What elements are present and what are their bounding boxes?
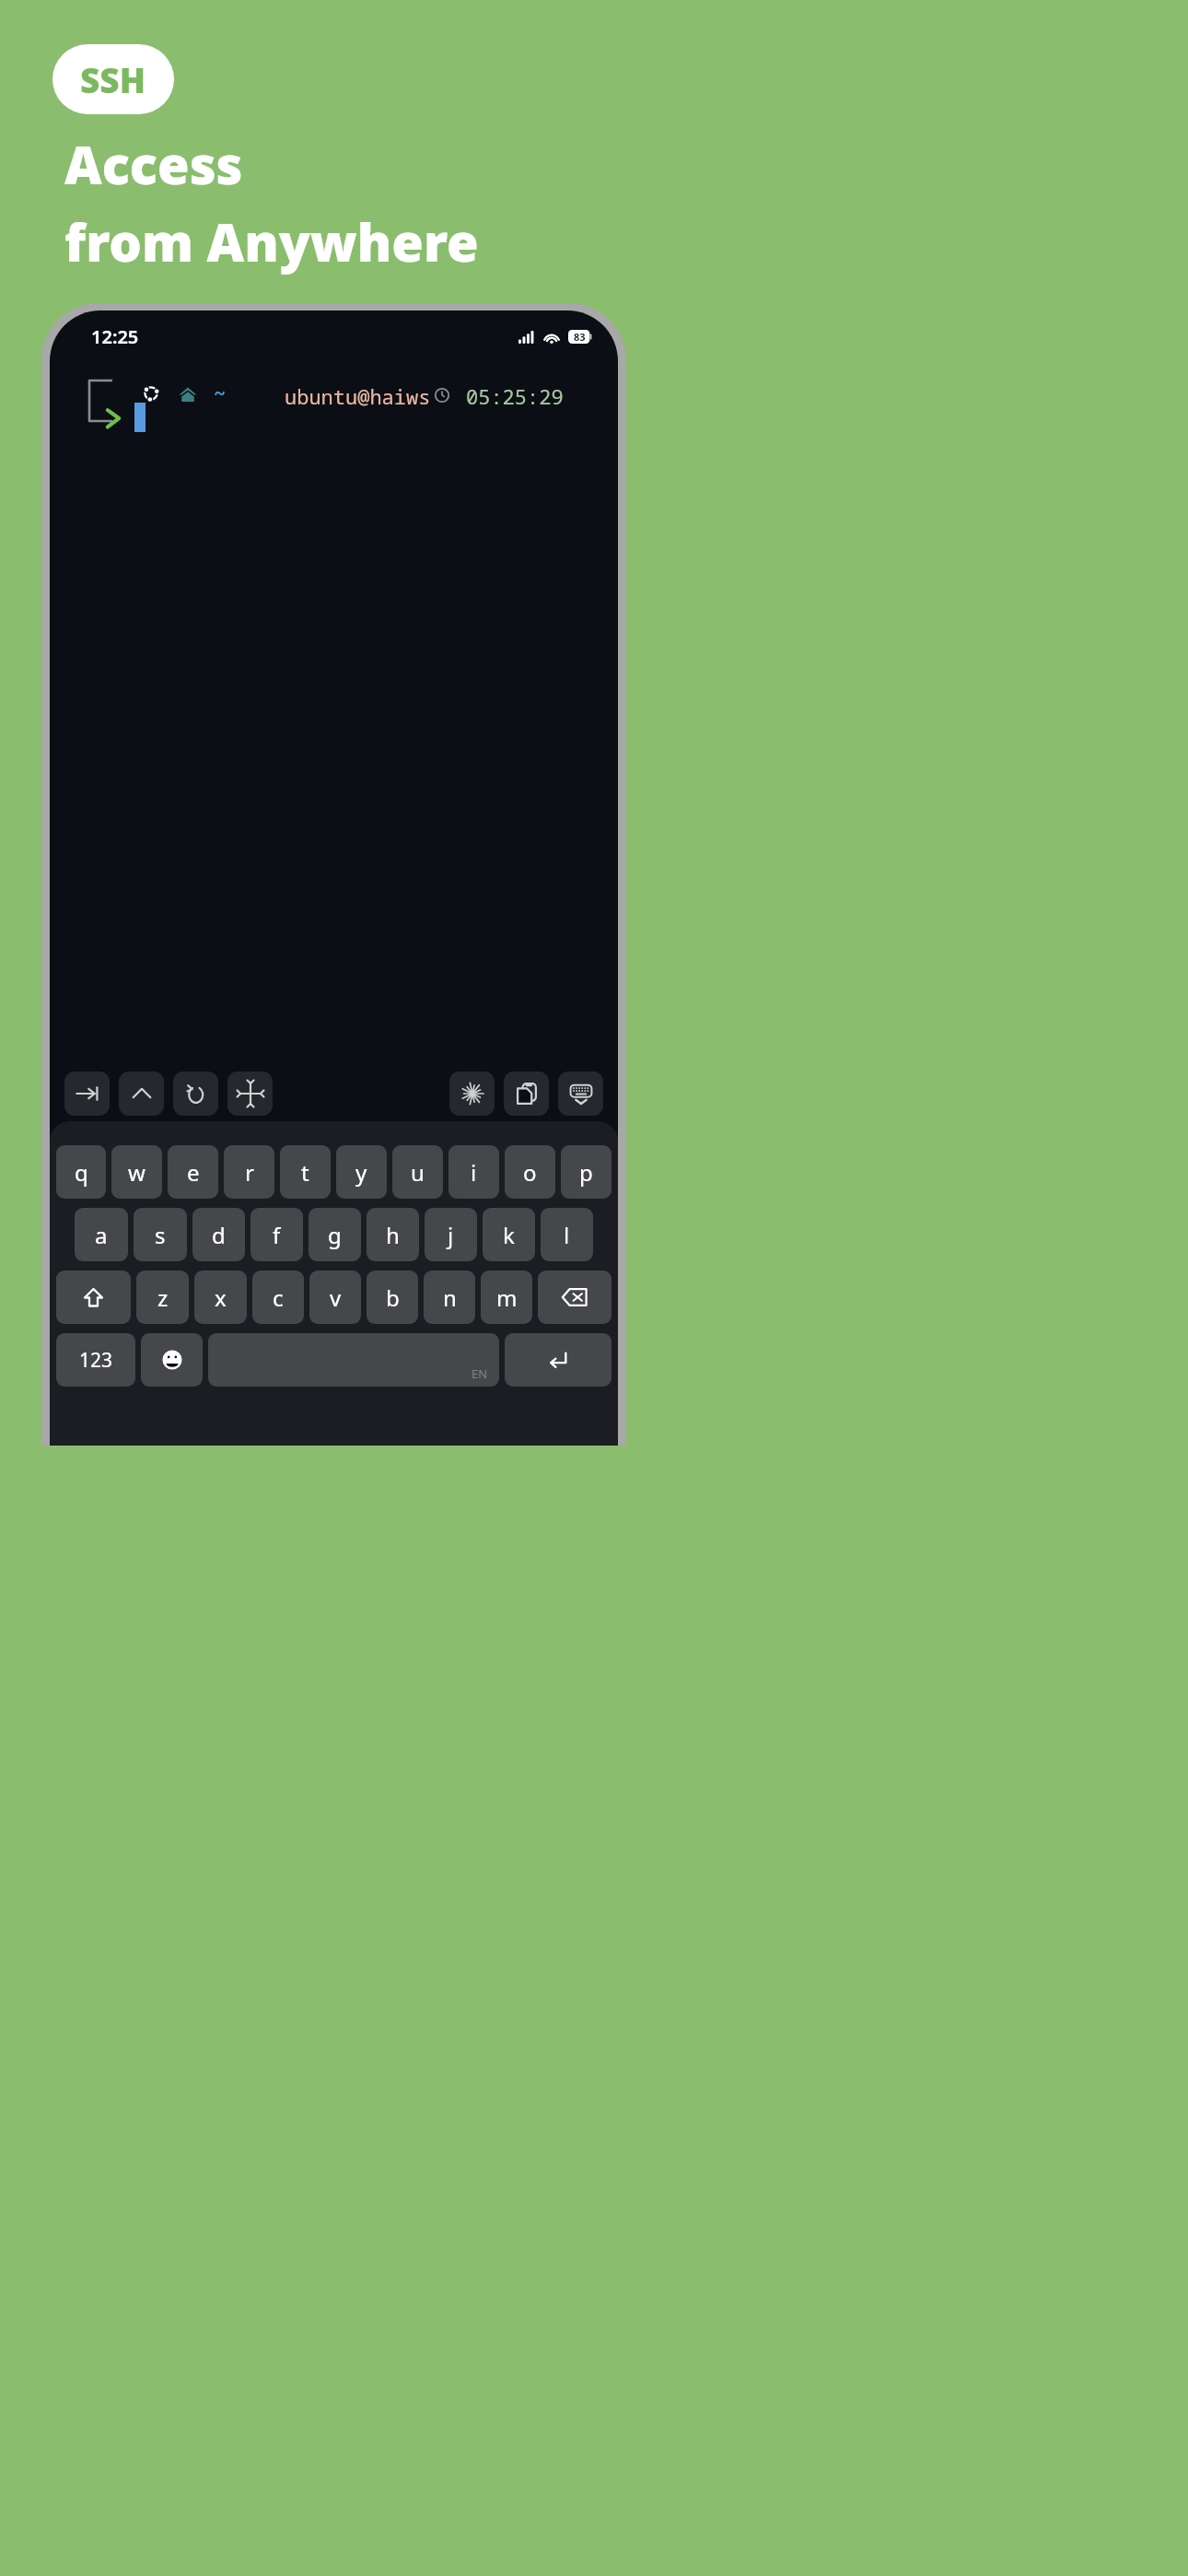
button[interactable]: Escape — [173, 1071, 218, 1116]
button[interactable]: Paste — [504, 1071, 549, 1116]
staticText: y — [355, 1157, 367, 1188]
staticText: h — [386, 1220, 400, 1250]
staticText: j — [448, 1220, 454, 1250]
button[interactable]: Space — [208, 1333, 499, 1387]
button[interactable]: z — [136, 1270, 189, 1324]
staticText: from Anywhere — [64, 206, 479, 276]
staticText: p — [579, 1157, 593, 1188]
button[interactable]: c — [252, 1270, 304, 1324]
button[interactable]: m — [481, 1270, 532, 1324]
staticText: m — [496, 1282, 518, 1313]
button[interactable]: Backspace — [538, 1270, 611, 1324]
staticText: n — [443, 1282, 457, 1313]
button[interactable]: g — [309, 1208, 361, 1261]
staticText: d — [212, 1220, 226, 1250]
button[interactable]: Shift — [56, 1270, 131, 1324]
button[interactable]: y — [336, 1145, 387, 1199]
button[interactable]: Control — [119, 1071, 164, 1116]
button[interactable]: SSH — [52, 44, 174, 114]
button[interactable]: i — [448, 1145, 499, 1199]
staticText: k — [503, 1220, 515, 1250]
staticText: 123 — [79, 1347, 113, 1374]
button[interactable]: n — [424, 1270, 475, 1324]
button[interactable]: l — [541, 1208, 593, 1261]
button[interactable]: x — [194, 1270, 247, 1324]
button[interactable]: b — [367, 1270, 418, 1324]
button[interactable]: r — [224, 1145, 274, 1199]
staticText: a — [95, 1220, 108, 1250]
button[interactable]: Tab — [64, 1071, 110, 1116]
button[interactable]: Emoji — [141, 1333, 203, 1387]
staticText: 05:25:29 — [466, 382, 564, 410]
button[interactable]: a — [75, 1208, 128, 1261]
button[interactable]: v — [309, 1270, 361, 1324]
button[interactable]: Special keys — [449, 1071, 495, 1116]
staticText: e — [187, 1157, 200, 1188]
staticText: v — [330, 1282, 342, 1313]
button[interactable]: q — [56, 1145, 106, 1199]
staticText: q — [75, 1157, 88, 1188]
staticText: i — [471, 1157, 477, 1188]
staticText: ubuntu@haiws — [285, 382, 431, 410]
staticText: z — [157, 1282, 169, 1313]
staticText: w — [128, 1157, 146, 1188]
button[interactable]: s — [134, 1208, 187, 1261]
staticText: t — [301, 1157, 309, 1188]
staticText: o — [523, 1157, 537, 1188]
button[interactable]: u — [392, 1145, 443, 1199]
button[interactable]: k — [483, 1208, 535, 1261]
button[interactable]: e — [168, 1145, 218, 1199]
button[interactable]: Move — [227, 1071, 273, 1116]
button[interactable]: d — [192, 1208, 245, 1261]
staticText: Access — [64, 129, 243, 199]
staticText: u — [411, 1157, 425, 1188]
staticText: s — [155, 1220, 166, 1250]
staticText: c — [273, 1282, 284, 1313]
button[interactable]: t — [280, 1145, 331, 1199]
button[interactable]: f — [250, 1208, 303, 1261]
staticText: ~ — [214, 379, 227, 406]
staticText: SSH — [80, 56, 146, 102]
button[interactable]: 123 — [56, 1333, 135, 1387]
staticText: l — [564, 1220, 570, 1250]
staticText: r — [245, 1157, 254, 1188]
button[interactable]: p — [561, 1145, 611, 1199]
button[interactable]: j — [425, 1208, 477, 1261]
button[interactable]: Hide keyboard — [558, 1071, 603, 1116]
staticText: f — [273, 1220, 281, 1250]
staticText: 83 — [574, 330, 586, 344]
button[interactable]: h — [367, 1208, 419, 1261]
staticText: 12:25 — [91, 324, 139, 349]
staticText: EN — [472, 1365, 488, 1382]
button[interactable]: Enter — [505, 1333, 611, 1387]
staticText: b — [386, 1282, 400, 1313]
button[interactable]: o — [505, 1145, 555, 1199]
staticText: g — [328, 1220, 342, 1250]
staticText: x — [215, 1282, 227, 1313]
button[interactable]: w — [111, 1145, 162, 1199]
